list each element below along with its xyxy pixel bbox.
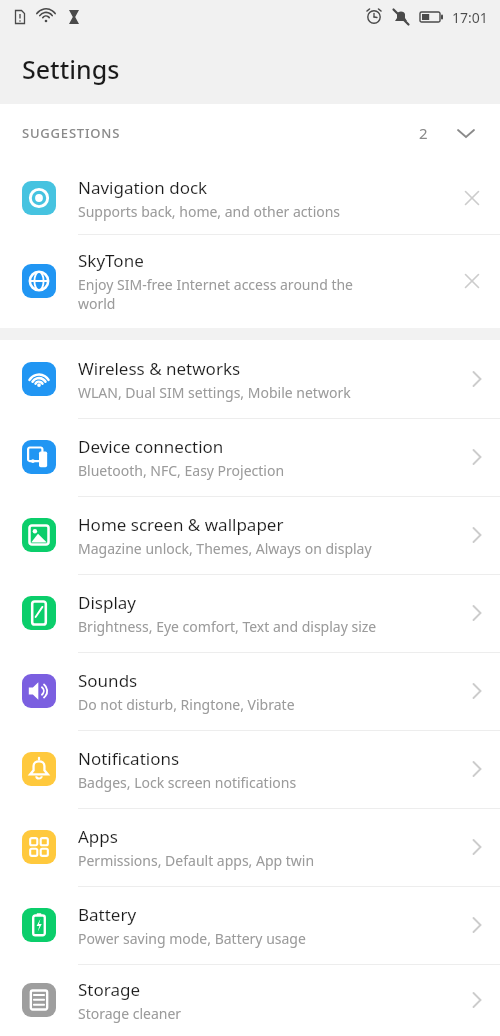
- staticText: Notifications: [78, 747, 180, 770]
- staticText: 2: [419, 123, 428, 143]
- button[interactable]: Battery: [0, 886, 500, 964]
- staticText: SkyTone: [78, 249, 144, 272]
- button[interactable]: Sounds: [0, 652, 500, 730]
- staticText: Brightness, Eye comfort, Text and displa…: [78, 617, 377, 636]
- button[interactable]: Apps: [0, 808, 500, 886]
- staticText: WLAN, Dual SIM settings, Mobile network: [78, 383, 351, 402]
- button[interactable]: SkyTone: [0, 234, 500, 328]
- button[interactable]: Navigation dock: [0, 162, 500, 234]
- staticText: Settings: [22, 52, 120, 86]
- staticText: SUGGESTIONS: [22, 124, 121, 142]
- staticText: Display: [78, 591, 136, 614]
- button[interactable]: Storage: [0, 964, 500, 1036]
- button[interactable]: Display: [0, 574, 500, 652]
- button[interactable]: SUGGESTIONS: [0, 104, 500, 162]
- staticText: Device connection: [78, 435, 224, 458]
- staticText: Supports back, home, and other actions: [78, 202, 341, 221]
- button[interactable]: Home screen & wallpaper: [0, 496, 500, 574]
- staticText: Wireless & networks: [78, 357, 241, 380]
- staticText: Bluetooth, NFC, Easy Projection: [78, 461, 285, 480]
- staticText: Badges, Lock screen notifications: [78, 773, 297, 792]
- staticText: Apps: [78, 825, 118, 848]
- staticText: Storage cleaner: [78, 1004, 182, 1023]
- staticText: Enjoy SIM-free Internet access around th…: [78, 275, 354, 313]
- staticText: Home screen & wallpaper: [78, 513, 284, 536]
- staticText: Power saving mode, Battery usage: [78, 929, 306, 948]
- button[interactable]: Dismiss Navigation dock: [444, 162, 500, 234]
- button[interactable]: Device connection: [0, 418, 500, 496]
- staticText: Battery: [78, 903, 137, 926]
- staticText: Magazine unlock, Themes, Always on displ…: [78, 539, 372, 558]
- button[interactable]: Wireless & networks: [0, 340, 500, 418]
- button[interactable]: Notifications: [0, 730, 500, 808]
- staticText: 17:01: [452, 8, 488, 27]
- staticText: Sounds: [78, 669, 138, 692]
- button[interactable]: Dismiss SkyTone: [444, 234, 500, 328]
- staticText: Do not disturb, Ringtone, Vibrate: [78, 695, 295, 714]
- staticText: Permissions, Default apps, App twin: [78, 851, 315, 870]
- staticText: Navigation dock: [78, 176, 208, 199]
- staticText: Storage: [78, 978, 141, 1001]
